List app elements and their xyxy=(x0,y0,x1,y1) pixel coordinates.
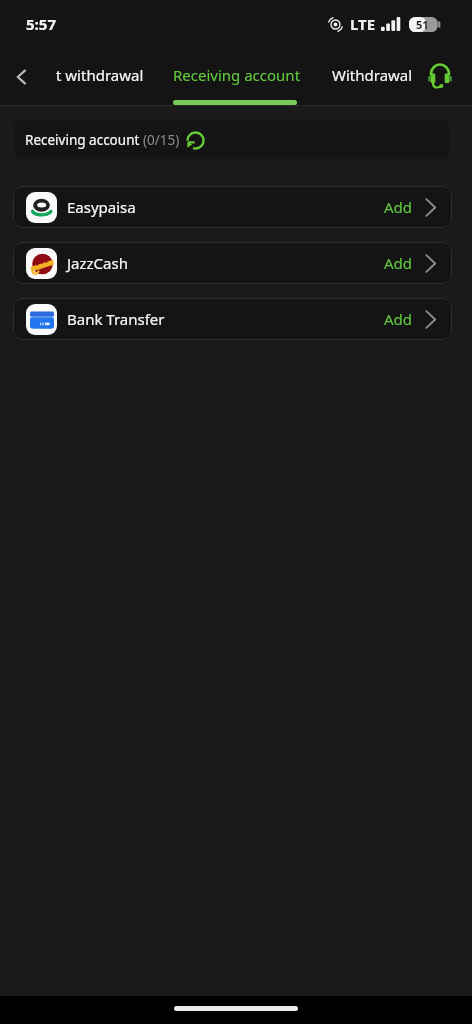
staticText: Add xyxy=(384,253,413,273)
staticText: LTE xyxy=(350,14,376,34)
staticText: Receiving account xyxy=(173,65,301,85)
button[interactable]: Bank Transfer xyxy=(13,298,452,340)
staticText: 51 xyxy=(416,17,429,32)
button[interactable]: Customer support xyxy=(424,59,456,91)
staticText: Easypaisa xyxy=(67,197,136,217)
staticText: JazzCash xyxy=(67,253,128,273)
staticText: Receiving account xyxy=(25,131,143,149)
staticText: Bank Transfer xyxy=(67,309,165,329)
staticText: Add xyxy=(384,197,413,217)
staticText: 5:57 xyxy=(26,14,56,34)
button[interactable]: t withdrawal xyxy=(56,65,144,85)
staticText: Add xyxy=(384,309,413,329)
button[interactable]: Refresh xyxy=(184,129,206,151)
button[interactable]: Easypaisa xyxy=(13,186,452,228)
button[interactable]: JazzCash xyxy=(13,242,452,284)
staticText: (0/15) xyxy=(143,131,180,149)
button[interactable]: Withdrawal xyxy=(332,65,413,85)
staticText: t withdrawal xyxy=(56,65,144,85)
button[interactable]: Receiving account xyxy=(173,65,301,85)
staticText: Withdrawal xyxy=(332,65,413,85)
button[interactable]: Back xyxy=(2,57,42,97)
